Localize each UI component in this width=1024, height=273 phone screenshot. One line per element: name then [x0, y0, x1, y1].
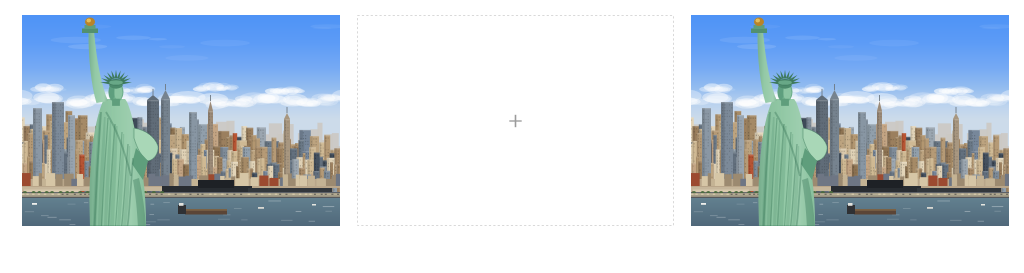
- button[interactable]: Add photo: [357, 15, 674, 226]
- button[interactable]: Photo of the Statue of Liberty: [691, 15, 1009, 226]
- button[interactable]: Photo of the Statue of Liberty: [22, 15, 340, 226]
